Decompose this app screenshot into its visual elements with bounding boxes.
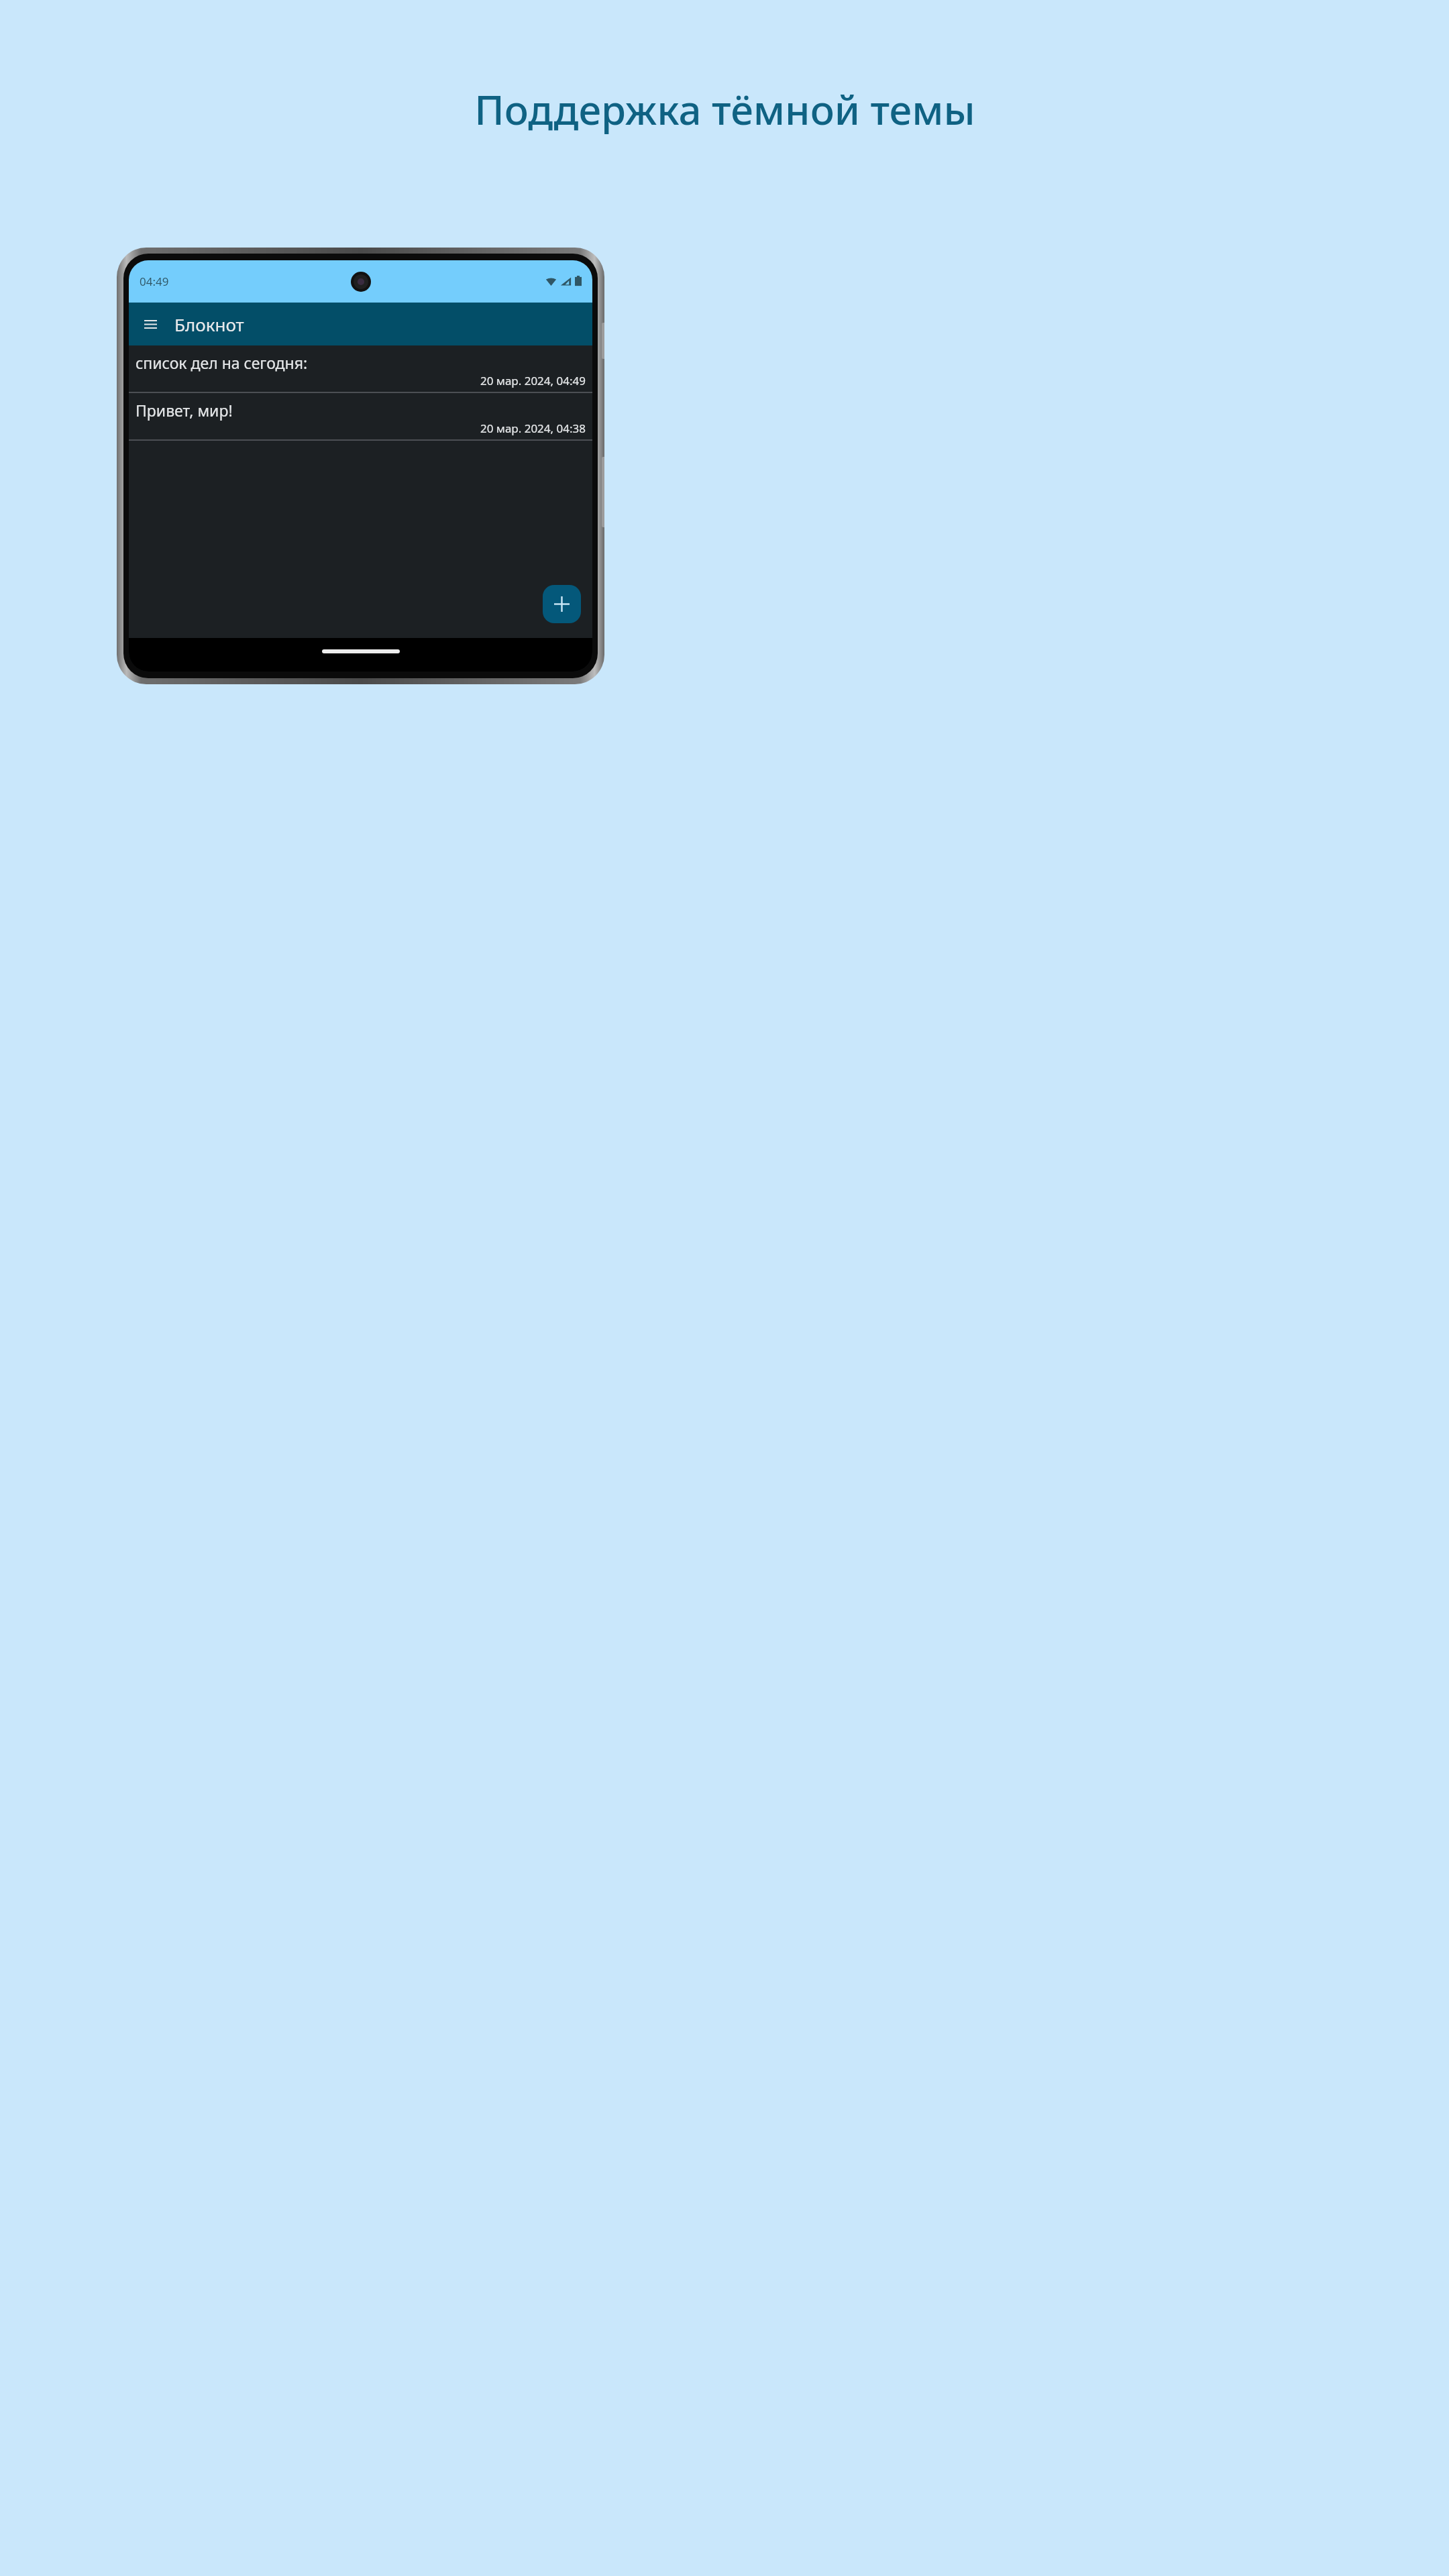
staticText: Привет, мир!	[136, 400, 233, 421]
button[interactable]: список дел на сегодня:	[129, 345, 592, 392]
button[interactable]: Add note	[543, 585, 581, 623]
staticText: Поддержка тёмной темы	[474, 82, 975, 137]
staticText: Блокнот	[174, 313, 244, 336]
staticText: список дел на сегодня:	[136, 352, 308, 373]
staticText: 20 мар. 2024, 04:49	[136, 373, 586, 388]
button[interactable]: Привет, мир!	[129, 393, 592, 439]
staticText: 20 мар. 2024, 04:38	[136, 421, 586, 436]
staticText: 04:49	[140, 274, 169, 289]
button[interactable]: Menu	[134, 308, 166, 340]
